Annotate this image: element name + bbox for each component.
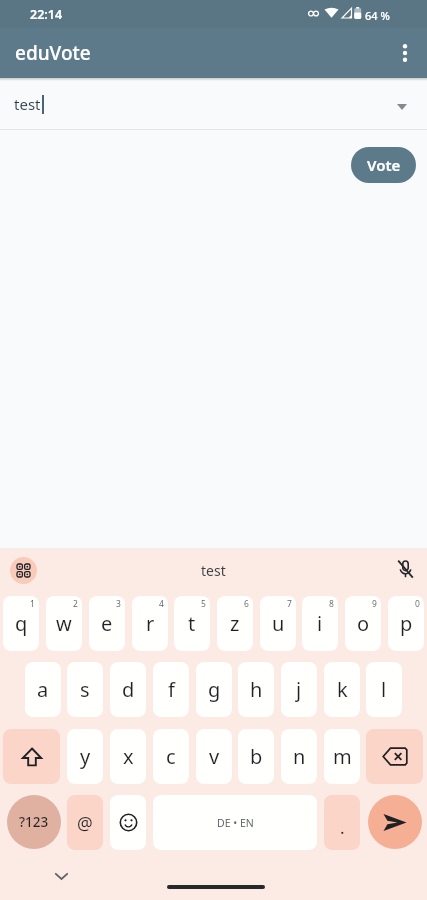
button[interactable]: d bbox=[110, 662, 146, 717]
button[interactable]: a bbox=[25, 662, 61, 717]
button[interactable]: test bbox=[201, 561, 226, 580]
staticText: x bbox=[123, 743, 134, 770]
staticText: o bbox=[357, 610, 370, 637]
staticText: test bbox=[14, 94, 41, 114]
staticText: 0 bbox=[415, 598, 420, 610]
staticText: w bbox=[56, 610, 72, 637]
button[interactable]: c bbox=[153, 729, 189, 784]
button[interactable]: o bbox=[345, 596, 381, 651]
staticText: 1 bbox=[30, 598, 35, 610]
button[interactable]: f bbox=[153, 662, 189, 717]
staticText: u bbox=[272, 610, 285, 637]
button[interactable]: s bbox=[67, 662, 103, 717]
staticText: 22:14 bbox=[30, 6, 63, 23]
staticText: . bbox=[340, 816, 345, 839]
button[interactable]: l bbox=[366, 662, 402, 717]
staticText: m bbox=[333, 743, 352, 770]
staticText: n bbox=[293, 743, 306, 770]
staticText: 7 bbox=[287, 598, 292, 610]
button[interactable]: test bbox=[0, 78, 427, 130]
button[interactable]: q bbox=[3, 596, 39, 651]
staticText: @ bbox=[77, 811, 93, 835]
button[interactable]: v bbox=[196, 729, 232, 784]
staticText: k bbox=[337, 676, 348, 703]
button[interactable] bbox=[383, 31, 427, 75]
staticText: 3 bbox=[116, 598, 121, 610]
button[interactable]: e bbox=[89, 596, 125, 651]
staticText: 5 bbox=[201, 598, 206, 610]
staticText: DE • EN bbox=[217, 816, 254, 830]
staticText: eduVote bbox=[15, 40, 91, 66]
staticText: j bbox=[296, 676, 302, 703]
staticText: q bbox=[15, 610, 28, 637]
button[interactable]: y bbox=[67, 729, 103, 784]
button[interactable]: w bbox=[46, 596, 82, 651]
staticText: 6 bbox=[244, 598, 249, 610]
staticText: r bbox=[146, 610, 155, 637]
staticText: 9 bbox=[372, 598, 377, 610]
staticText: f bbox=[168, 676, 175, 703]
button[interactable]: i bbox=[302, 596, 338, 651]
button[interactable]: t bbox=[174, 596, 210, 651]
button[interactable]: n bbox=[281, 729, 317, 784]
staticText: a bbox=[37, 676, 49, 703]
staticText: d bbox=[122, 676, 135, 703]
button[interactable]: x bbox=[110, 729, 146, 784]
staticText: ?123 bbox=[19, 813, 49, 831]
button[interactable]: r bbox=[132, 596, 168, 651]
staticText: e bbox=[101, 610, 113, 637]
staticText: s bbox=[80, 676, 90, 703]
button[interactable]: u bbox=[260, 596, 296, 651]
button[interactable]: . bbox=[324, 795, 360, 850]
staticText: t bbox=[188, 610, 196, 637]
staticText: g bbox=[208, 676, 221, 703]
staticText: 4 bbox=[159, 598, 164, 610]
button[interactable]: @ bbox=[67, 795, 103, 850]
staticText: i bbox=[317, 610, 323, 637]
button[interactable] bbox=[368, 795, 422, 849]
button[interactable]: h bbox=[238, 662, 274, 717]
staticText: y bbox=[80, 743, 91, 770]
button[interactable]: p bbox=[388, 596, 424, 651]
button[interactable]: DE • EN bbox=[153, 795, 317, 850]
button[interactable]: b bbox=[238, 729, 274, 784]
button[interactable] bbox=[10, 557, 37, 584]
button[interactable]: ?123 bbox=[7, 795, 61, 849]
staticText: l bbox=[381, 676, 387, 703]
button[interactable]: k bbox=[324, 662, 360, 717]
staticText: b bbox=[250, 743, 263, 770]
staticText: h bbox=[250, 676, 263, 703]
staticText: v bbox=[209, 743, 220, 770]
staticText: z bbox=[230, 610, 240, 637]
staticText: 8 bbox=[329, 598, 334, 610]
button[interactable] bbox=[390, 554, 420, 584]
button[interactable]: z bbox=[217, 596, 253, 651]
staticText: 2 bbox=[73, 598, 78, 610]
button[interactable] bbox=[110, 795, 146, 850]
button[interactable] bbox=[3, 729, 60, 784]
button[interactable] bbox=[366, 729, 423, 784]
button[interactable]: Vote bbox=[351, 147, 416, 183]
staticText: p bbox=[400, 610, 413, 637]
staticText: 64 % bbox=[365, 8, 390, 23]
button[interactable]: g bbox=[196, 662, 232, 717]
staticText: c bbox=[166, 743, 176, 770]
button[interactable]: m bbox=[324, 729, 360, 784]
button[interactable]: j bbox=[281, 662, 317, 717]
staticText: Vote bbox=[367, 155, 401, 175]
